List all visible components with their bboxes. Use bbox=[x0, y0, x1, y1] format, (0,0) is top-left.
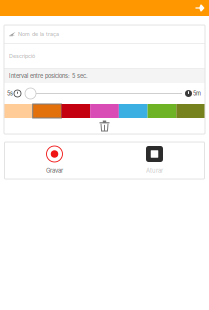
button[interactable]: Aturar bbox=[104, 142, 204, 179]
button[interactable]: Colour bbox=[4, 104, 33, 118]
button[interactable]: Colour bbox=[90, 104, 119, 118]
button[interactable]: Colour bbox=[176, 104, 205, 118]
staticText: 5s bbox=[7, 90, 13, 97]
button[interactable]: Gravar bbox=[4, 142, 104, 179]
staticText: Aturar bbox=[146, 167, 163, 174]
button[interactable]: Colour bbox=[119, 104, 148, 118]
button[interactable]: Next bbox=[192, 0, 208, 16]
staticText: Interval entre posicions: 5 sec. bbox=[9, 73, 88, 79]
button[interactable]: Colour bbox=[61, 104, 90, 118]
button[interactable]: Delete bbox=[4, 118, 205, 134]
staticText: 5m bbox=[193, 90, 201, 97]
button[interactable]: Colour bbox=[33, 104, 61, 118]
button[interactable]: Descripció bbox=[4, 44, 205, 68]
staticText: Nom de la traça bbox=[18, 31, 59, 37]
staticText: Gravar bbox=[46, 167, 63, 174]
button[interactable]: Nom de la traça bbox=[4, 25, 205, 43]
staticText: Descripció bbox=[9, 53, 35, 59]
